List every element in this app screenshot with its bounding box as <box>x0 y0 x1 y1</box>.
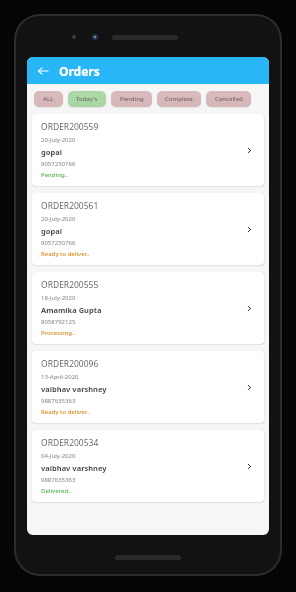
staticText: vaibhav varshney <box>41 463 107 473</box>
staticText: 20-July-2020 <box>41 136 76 144</box>
staticText: ORDER200534 <box>41 437 99 449</box>
staticText: 9887635363 <box>41 397 76 405</box>
button[interactable]: ORDER200561 <box>32 193 264 265</box>
staticText: Delivered.. <box>41 487 72 495</box>
button[interactable]: ORDER200096 <box>32 351 264 423</box>
staticText: 9887635363 <box>41 476 76 484</box>
staticText: gopal <box>41 147 62 157</box>
staticText: Cancelled <box>215 95 243 103</box>
staticText: Complete <box>165 95 193 103</box>
staticText: Pending <box>120 95 144 103</box>
other: Open order details <box>242 222 256 236</box>
button[interactable]: ORDER200534 <box>32 430 264 502</box>
staticText: 04-July-2020 <box>41 452 76 460</box>
other: Open order details <box>242 459 256 473</box>
staticText: ORDER200561 <box>41 200 99 212</box>
button[interactable]: ORDER200559 <box>32 114 264 186</box>
staticText: ORDER200555 <box>41 279 99 291</box>
staticText: 13-April-2020 <box>41 373 79 381</box>
staticText: Pending.. <box>41 171 68 179</box>
staticText: gopal <box>41 226 62 236</box>
other: Open order details <box>242 301 256 315</box>
button[interactable]: Cancelled <box>206 91 251 107</box>
staticText: Today's <box>76 95 98 103</box>
staticText: Orders <box>59 63 100 79</box>
staticText: ALL <box>43 95 54 103</box>
button[interactable]: Pending <box>111 91 152 107</box>
staticText: 8058792125 <box>41 318 76 326</box>
staticText: Amamika Gupta <box>41 305 102 315</box>
button[interactable]: ALL <box>34 91 63 107</box>
button[interactable]: ORDER200555 <box>32 272 264 344</box>
staticText: ORDER200096 <box>41 358 99 370</box>
staticText: 9057250766 <box>41 160 76 168</box>
staticText: vaibhav varshney <box>41 384 107 394</box>
staticText: Ready to deliver.. <box>41 250 90 258</box>
staticText: Ready to deliver.. <box>41 408 90 416</box>
other: Open order details <box>242 380 256 394</box>
button[interactable]: Back <box>33 61 53 81</box>
other: Open order details <box>242 143 256 157</box>
staticText: Processing.. <box>41 329 76 337</box>
staticText: ORDER200559 <box>41 121 99 133</box>
staticText: 18-July-2020 <box>41 294 76 302</box>
button[interactable]: Complete <box>157 91 201 107</box>
staticText: 9057250766 <box>41 239 76 247</box>
staticText: 20-July-2020 <box>41 215 76 223</box>
button[interactable]: Today's <box>68 91 106 107</box>
